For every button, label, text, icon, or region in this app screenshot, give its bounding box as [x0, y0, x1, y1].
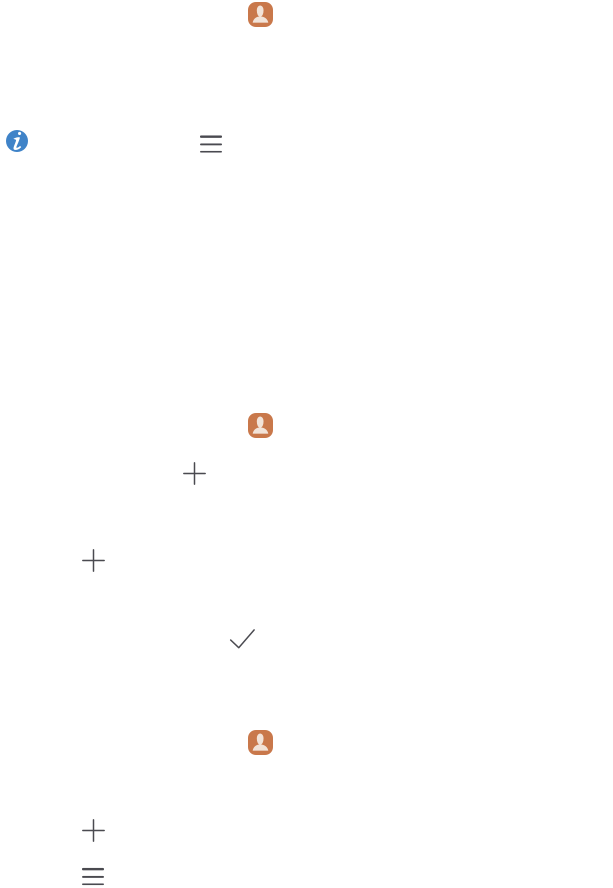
- button[interactable]: Done: [229, 628, 254, 648]
- button[interactable]: Add: [82, 819, 105, 842]
- button[interactable]: Menu: [82, 868, 104, 884]
- button[interactable]: Account: [248, 2, 273, 27]
- button[interactable]: Add: [82, 549, 105, 572]
- button[interactable]: Account: [248, 730, 273, 755]
- button[interactable]: Account: [248, 413, 273, 438]
- button[interactable]: Menu: [200, 136, 222, 152]
- button[interactable]: Information: [6, 130, 28, 152]
- button[interactable]: Add: [183, 462, 206, 485]
